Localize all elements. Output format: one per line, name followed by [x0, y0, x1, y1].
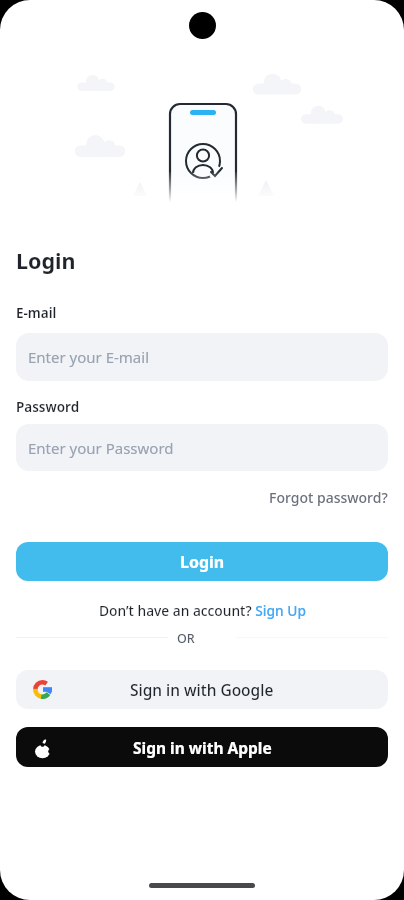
button[interactable]: Enter your Password — [16, 424, 388, 471]
button[interactable]: Enter your E-mail — [16, 333, 388, 381]
button[interactable]: Sign in with Google — [16, 670, 388, 709]
staticText: Don’t have an account? Sign Up — [99, 601, 306, 620]
staticText: Enter your E-mail — [28, 347, 150, 367]
button[interactable]: Sign in with Apple — [16, 727, 388, 767]
button[interactable]: Don’t have an account? Sign Up — [99, 601, 306, 620]
staticText: OR — [177, 630, 195, 647]
staticText: Forgot password? — [269, 488, 388, 507]
staticText: Sign in with Google — [130, 679, 274, 700]
staticText: Login — [180, 551, 225, 573]
staticText: Enter your Password — [28, 438, 174, 458]
staticText: Password — [16, 398, 80, 416]
staticText: E-mail — [16, 304, 57, 322]
button[interactable]: Forgot password? — [269, 488, 388, 507]
button[interactable]: Login — [16, 542, 388, 581]
staticText: Login — [16, 246, 76, 275]
staticText: Sign in with Apple — [133, 737, 272, 758]
